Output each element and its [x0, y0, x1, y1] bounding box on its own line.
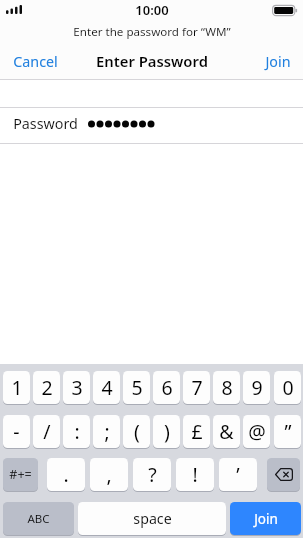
button[interactable]: 2: [33, 371, 60, 404]
other: Battery full: [272, 4, 297, 17]
button[interactable]: @: [243, 415, 270, 448]
staticText: (: [134, 418, 140, 445]
staticText: 7: [191, 374, 203, 401]
staticText: /: [43, 418, 51, 445]
button[interactable]: ,: [90, 458, 128, 491]
button[interactable]: 9: [243, 371, 270, 404]
button[interactable]: Password: [0, 108, 303, 143]
button[interactable]: 1: [3, 371, 30, 404]
button[interactable]: Join: [248, 43, 303, 79]
staticText: #+=: [9, 466, 32, 483]
staticText: Enter the password for “WM”: [73, 24, 231, 40]
button[interactable]: space: [78, 502, 226, 535]
staticText: 1: [11, 374, 23, 401]
button[interactable]: ): [153, 415, 180, 448]
staticText: 6: [161, 374, 173, 401]
button[interactable]: :: [63, 415, 90, 448]
button[interactable]: Join: [230, 502, 301, 535]
button[interactable]: 6: [153, 371, 180, 404]
staticText: 9: [251, 374, 263, 401]
staticText: ;: [104, 418, 110, 445]
staticText: 2: [41, 374, 53, 401]
button[interactable]: #+=: [3, 458, 38, 491]
button[interactable]: 7: [183, 371, 210, 404]
staticText: &: [219, 418, 234, 445]
staticText: space: [133, 509, 172, 528]
button[interactable]: 4: [93, 371, 120, 404]
button[interactable]: &: [213, 415, 240, 448]
button[interactable]: ”: [274, 415, 301, 448]
button[interactable]: 5: [123, 371, 150, 404]
staticText: Join: [265, 52, 291, 71]
staticText: 10:00: [135, 1, 169, 19]
staticText: Password: [13, 114, 78, 133]
staticText: Cancel: [13, 52, 58, 71]
button[interactable]: ABC: [3, 502, 74, 535]
button[interactable]: (: [123, 415, 150, 448]
button[interactable]: £: [183, 415, 210, 448]
button[interactable]: Delete: [267, 458, 300, 491]
staticText: ?: [148, 461, 157, 488]
button[interactable]: 8: [213, 371, 240, 404]
staticText: ’: [236, 461, 240, 488]
staticText: £: [191, 418, 203, 445]
staticText: 3: [71, 374, 83, 401]
button[interactable]: Cancel: [0, 43, 72, 79]
staticText: ): [164, 418, 170, 445]
button[interactable]: !: [176, 458, 214, 491]
staticText: ”: [284, 418, 292, 445]
button[interactable]: ?: [133, 458, 171, 491]
staticText: .: [63, 461, 69, 488]
button[interactable]: 0: [274, 371, 301, 404]
staticText: !: [192, 461, 198, 488]
button[interactable]: -: [3, 415, 30, 448]
staticText: ABC: [27, 511, 50, 527]
button[interactable]: /: [33, 415, 60, 448]
staticText: 4: [101, 374, 113, 401]
staticText: 0: [282, 374, 294, 401]
other: Cellular signal: [6, 5, 22, 14]
staticText: Join: [254, 510, 278, 528]
staticText: ,: [106, 461, 112, 488]
button[interactable]: ;: [93, 415, 120, 448]
staticText: 8: [221, 374, 233, 401]
staticText: 5: [131, 374, 143, 401]
staticText: @: [248, 418, 266, 445]
button[interactable]: 3: [63, 371, 90, 404]
staticText: -: [13, 418, 20, 445]
button[interactable]: ’: [219, 458, 257, 491]
staticText: Enter Password: [96, 51, 208, 71]
button[interactable]: .: [47, 458, 85, 491]
staticText: :: [74, 418, 80, 445]
